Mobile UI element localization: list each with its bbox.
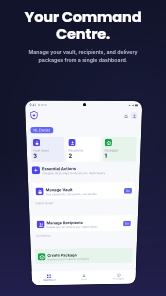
staticText: 3 items stored <box>35 201 54 204</box>
staticText: 9:41 <box>29 103 37 107</box>
staticText: Hi, Daniel <box>33 128 50 132</box>
staticText: Your passwords, documents, and secrets <box>46 192 97 195</box>
staticText: Recipients <box>68 148 84 153</box>
staticText: Manage Vault <box>46 187 73 192</box>
staticText: Go <box>125 222 129 225</box>
button[interactable]: Notifications <box>122 112 129 119</box>
staticText: Manage Recipients <box>46 220 83 225</box>
button[interactable]: Go <box>123 221 131 226</box>
button[interactable]: Packages <box>101 270 136 284</box>
button[interactable]: Dashboard <box>31 271 66 285</box>
staticText: Create Package <box>47 253 77 258</box>
button[interactable]: Go <box>124 188 132 194</box>
button[interactable]: Hi, Daniel <box>30 127 53 134</box>
staticText: Vault Items <box>33 148 50 153</box>
staticText: People who will receive your digital leg… <box>47 225 98 228</box>
button[interactable]: Manage Vault <box>32 182 135 199</box>
button[interactable]: Create Package <box>34 247 133 264</box>
staticText: Packages <box>113 278 124 280</box>
staticText: 1 <box>104 152 108 160</box>
staticText: Your Command Centre. <box>4 7 162 44</box>
staticText: Dashboard <box>43 279 56 282</box>
button[interactable]: Recipients <box>66 137 101 162</box>
staticText: Manage your vault, recipients, and deliv… <box>4 49 162 63</box>
staticText: 2 <box>68 153 73 160</box>
button[interactable]: Vault Items <box>30 137 64 162</box>
staticText: Complete these steps to secure your digi… <box>42 171 105 174</box>
staticText: 3 <box>33 153 38 160</box>
button[interactable]: Packages <box>102 137 137 162</box>
staticText: Bundle items for specific recipients <box>47 257 90 260</box>
button[interactable]: Vault <box>66 270 101 285</box>
staticText: Vault <box>81 278 87 281</box>
staticText: 2 recipients <box>36 234 51 237</box>
button[interactable]: Profile <box>130 112 138 120</box>
staticText: Packages <box>105 148 119 152</box>
staticText: Essential Actions <box>42 166 77 171</box>
button[interactable]: Manage Recipients <box>33 215 134 232</box>
other: App logo <box>30 111 38 119</box>
staticText: Go <box>126 189 130 193</box>
